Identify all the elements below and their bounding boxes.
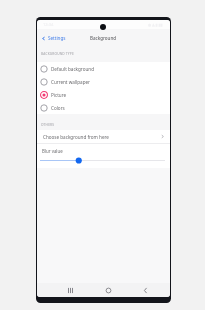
staticText: Current wallpaper: [51, 79, 91, 85]
staticText: Picture: [51, 92, 67, 98]
staticText: Blur value: [42, 148, 63, 154]
button[interactable]: Current wallpaper: [37, 75, 170, 88]
button[interactable]: Home: [103, 283, 114, 297]
staticText: Settings: [48, 35, 66, 41]
button[interactable]: Recent apps: [65, 283, 76, 297]
button[interactable]: Settings: [37, 29, 170, 47]
staticText: Background: [90, 35, 117, 41]
button[interactable]: Choose background from here: [37, 130, 170, 143]
button[interactable]: Default background: [37, 62, 170, 75]
staticText: Default background: [51, 66, 94, 72]
staticText: 12:34: [43, 22, 54, 27]
staticText: Choose background from here: [43, 134, 109, 140]
button[interactable]: Picture: [37, 88, 170, 101]
staticText: ● ▲ ▮ ▮▮: [148, 22, 163, 27]
button[interactable]: Back: [140, 283, 151, 297]
staticText: BACKGROUND TYPE: [41, 52, 74, 56]
staticText: OTHERS: [41, 123, 55, 127]
button[interactable]: Colors: [37, 101, 170, 114]
staticText: Colors: [51, 105, 65, 111]
